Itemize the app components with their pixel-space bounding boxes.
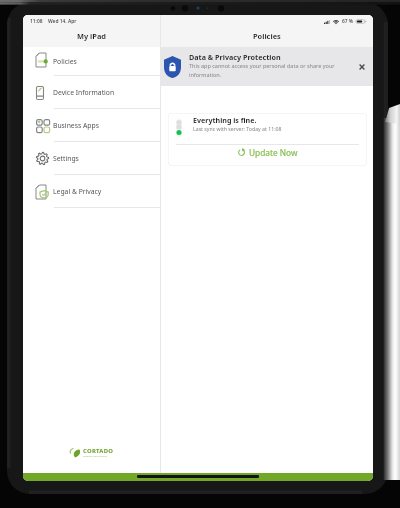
staticText: Legal & Privacy <box>53 187 102 196</box>
button[interactable]: Update Now <box>168 145 367 166</box>
staticText: Policies <box>253 31 281 41</box>
button[interactable]: Policies <box>23 47 160 76</box>
staticText: CORTADO <box>83 447 114 455</box>
staticText: My iPad <box>77 31 107 41</box>
button[interactable]: Legal & Privacy <box>23 175 160 208</box>
staticText: Business Apps <box>53 121 99 130</box>
button[interactable]: Device Information <box>23 76 160 109</box>
button[interactable]: Business Apps <box>23 109 160 142</box>
staticText: Last sync with server: Today at 11:08 <box>193 125 282 132</box>
staticText: Policies <box>53 57 77 66</box>
staticText: Wed 14. Apr <box>48 18 77 25</box>
staticText: Data & Privacy Protection <box>189 52 281 62</box>
staticText: This app cannot access your personal dat… <box>189 62 341 78</box>
staticText: 67 % <box>342 18 354 25</box>
staticText: 11:08 <box>30 18 43 25</box>
staticText: Everything is fine. <box>193 115 257 125</box>
staticText: Settings <box>53 154 79 163</box>
staticText: MOBILE SOLUTIONS <box>83 455 108 458</box>
button[interactable]: Settings <box>23 142 160 175</box>
button[interactable]: Close <box>355 60 369 74</box>
staticText: Update Now <box>249 147 298 158</box>
staticText: Device Information <box>53 88 115 97</box>
